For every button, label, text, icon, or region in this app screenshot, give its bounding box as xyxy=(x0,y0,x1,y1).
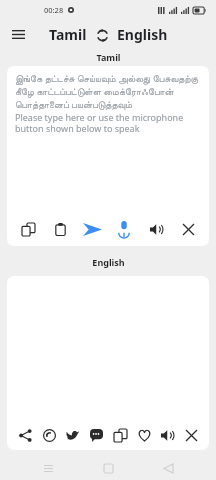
staticText: English xyxy=(117,25,168,44)
button[interactable]: Translate xyxy=(81,218,103,240)
button[interactable]: Microphone xyxy=(113,218,135,240)
button[interactable]: Tamil xyxy=(49,25,87,44)
staticText: Please type here or use the microphone b… xyxy=(15,111,201,135)
staticText: இங்கே தட்டச்சு செய்யவும் அல்லது பேசுவதற்… xyxy=(15,72,201,111)
button[interactable]: Back xyxy=(156,456,180,480)
button[interactable]: Message xyxy=(85,424,107,446)
button[interactable]: Clear xyxy=(177,218,199,240)
button[interactable]: WhatsApp xyxy=(38,424,60,446)
button[interactable]: Speak xyxy=(145,218,167,240)
button[interactable]: Share xyxy=(14,424,36,446)
button[interactable]: Copy xyxy=(109,424,131,446)
staticText: English xyxy=(92,256,125,268)
button[interactable]: Clear xyxy=(180,424,202,446)
staticText: Tamil xyxy=(49,25,87,44)
button[interactable]: Swap languages xyxy=(94,27,110,43)
button[interactable]: Recents xyxy=(36,456,60,480)
button[interactable]: Menu xyxy=(6,22,30,46)
button[interactable]: Speak xyxy=(156,424,178,446)
button[interactable]: Copy xyxy=(17,218,39,240)
staticText: Tamil xyxy=(96,51,121,63)
button[interactable]: Twitter xyxy=(61,424,83,446)
button[interactable]: English xyxy=(117,25,168,44)
button[interactable]: Paste xyxy=(49,218,71,240)
button[interactable]: Home xyxy=(96,456,120,480)
button[interactable]: Favourite xyxy=(133,424,155,446)
staticText: 00:28 xyxy=(44,5,64,15)
